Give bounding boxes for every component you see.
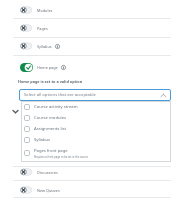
staticText: Home page	[37, 65, 58, 70]
staticText: Pages	[37, 26, 48, 31]
button[interactable]: Assignments list	[22, 124, 170, 134]
staticText: Assignments list	[34, 126, 67, 132]
staticText: Syllabus	[37, 44, 52, 49]
button[interactable]: Modules	[14, 2, 171, 18]
button[interactable]: Pages	[14, 20, 171, 36]
staticText: Requires a front page to be set in the c…	[34, 155, 88, 159]
button[interactable]: Home page	[14, 59, 171, 75]
staticText: Home page is set to a valid option	[18, 79, 83, 84]
button[interactable]: Select all options that are acceptable	[19, 89, 171, 101]
button[interactable]: Syllabus	[22, 135, 170, 145]
staticText: Course modules	[34, 115, 67, 121]
button[interactable]: Pages front page	[22, 148, 170, 158]
button[interactable]: Course modules	[22, 113, 170, 123]
staticText: Modules	[37, 8, 53, 13]
button[interactable]: New Quizzes	[14, 182, 171, 198]
staticText: Course activity stream	[34, 104, 78, 110]
staticText: Discussions	[37, 170, 58, 175]
button[interactable]: Syllabus	[14, 38, 171, 54]
button[interactable]: Course activity stream	[22, 102, 170, 112]
staticText: Pages front page	[34, 148, 68, 154]
staticText: Syllabus	[34, 137, 51, 143]
staticText: New Quizzes	[37, 188, 60, 193]
button[interactable]: Discussions	[14, 164, 171, 180]
button[interactable]: Collapse	[11, 107, 19, 115]
staticText: Select all options that are acceptable	[24, 92, 96, 98]
